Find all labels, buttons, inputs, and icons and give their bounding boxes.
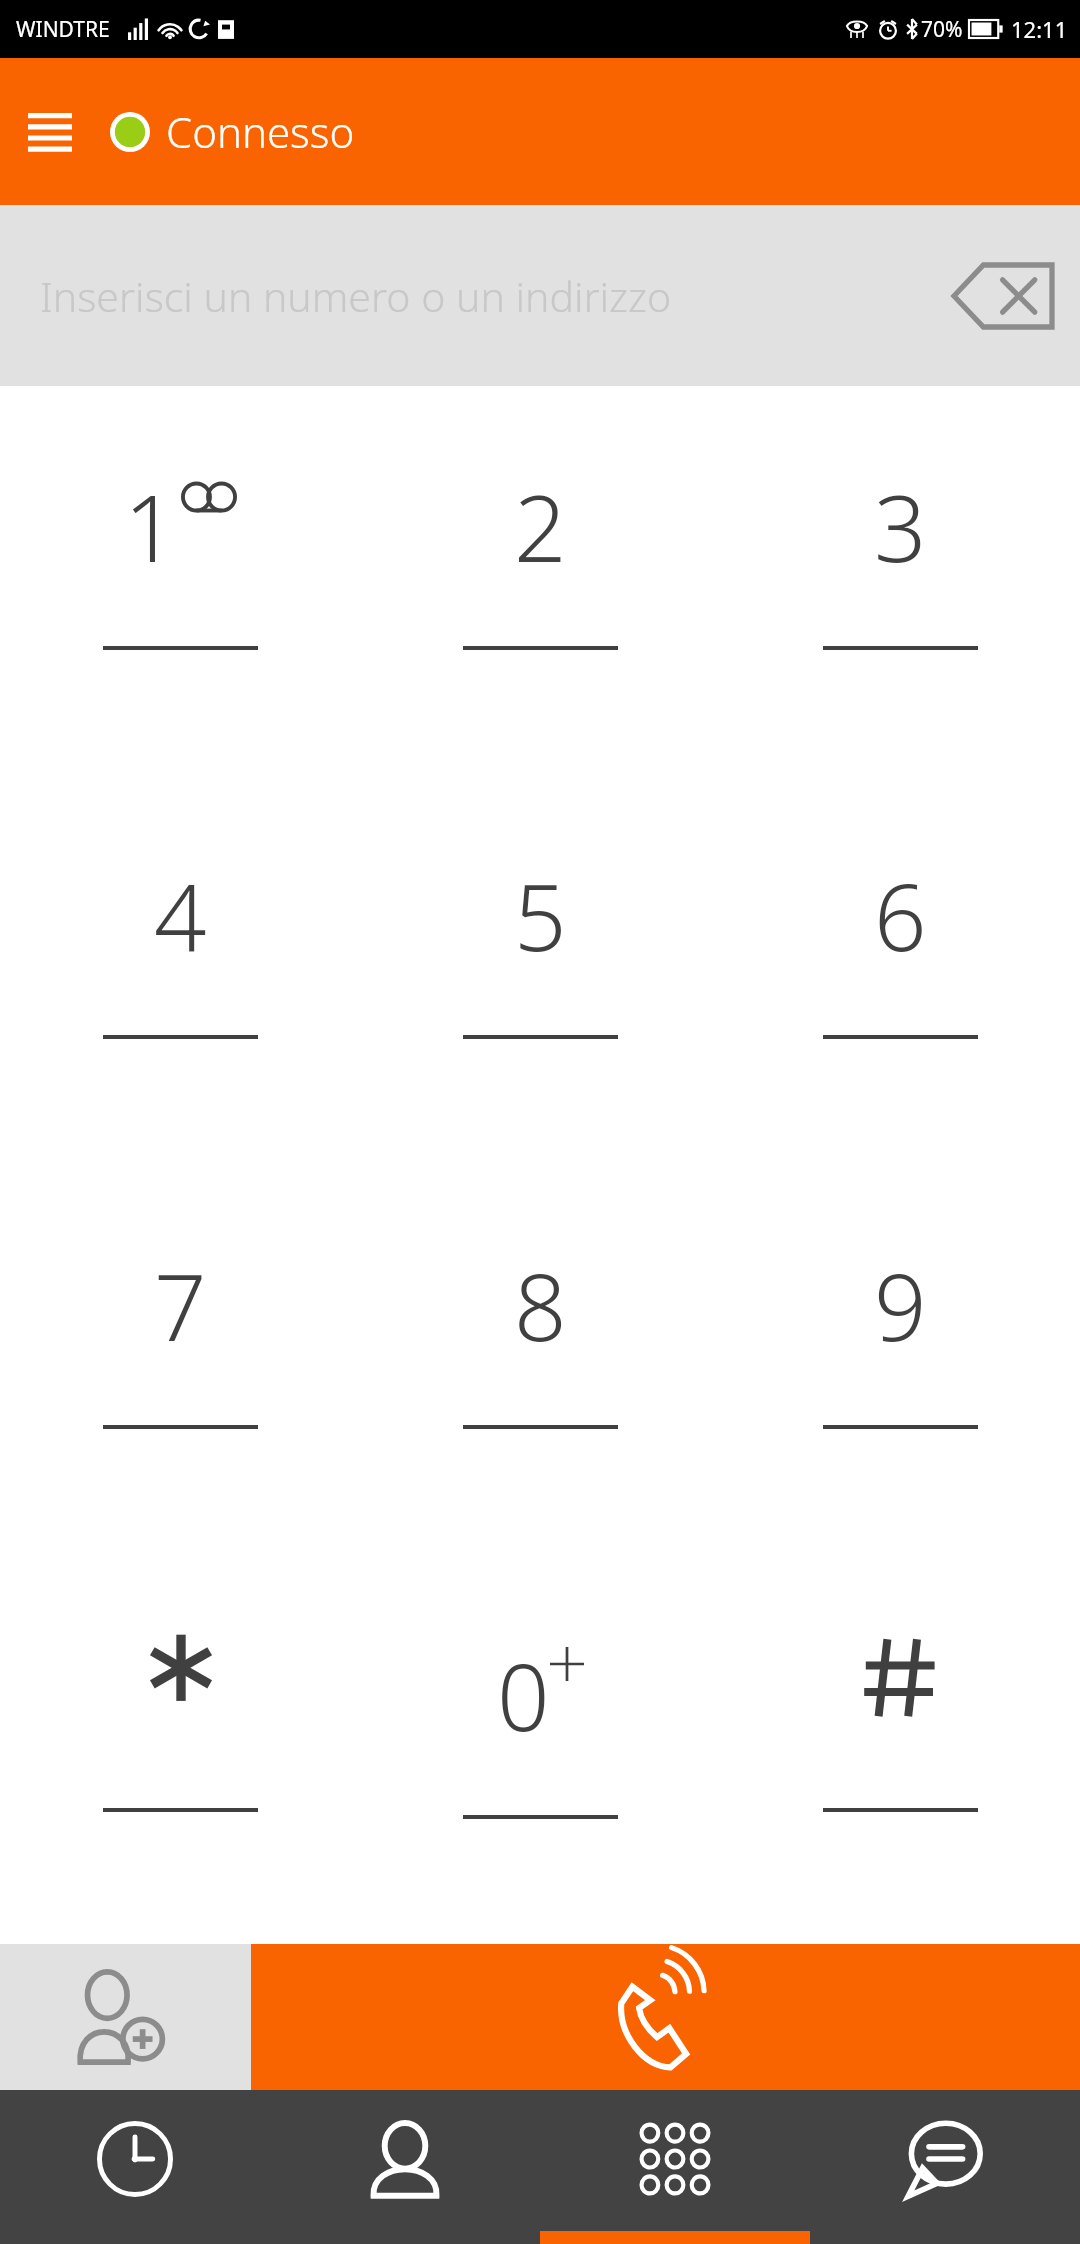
button[interactable]: Recents (0, 2090, 270, 2244)
staticText: 8 (514, 1243, 567, 1368)
button[interactable]: Backspace (948, 251, 1058, 341)
button[interactable]: 2 (360, 386, 720, 775)
staticText: 7 (154, 1243, 207, 1368)
button[interactable]: Messages (810, 2090, 1080, 2244)
button[interactable] (720, 1554, 1080, 1944)
staticText: 4 (154, 853, 207, 978)
button[interactable] (0, 1554, 360, 1944)
button[interactable]: Inserisci un numero o un indirizzo (0, 205, 1080, 386)
button[interactable]: 8 (360, 1164, 720, 1554)
staticText: 70% (921, 15, 963, 44)
staticText: 5 (514, 853, 567, 978)
button[interactable]: 5 (360, 775, 720, 1164)
button[interactable]: 7 (0, 1164, 360, 1554)
button[interactable]: 3 (720, 386, 1080, 775)
button[interactable]: 0 (360, 1554, 720, 1944)
staticText: Inserisci un numero o un indirizzo (40, 268, 672, 324)
staticText: WINDTRE (16, 15, 110, 44)
button[interactable]: 9 (720, 1164, 1080, 1554)
staticText: 0 (497, 1633, 550, 1758)
button[interactable]: Dialpad (540, 2090, 810, 2244)
button[interactable]: Contacts (270, 2090, 540, 2244)
staticText: 3 (874, 464, 927, 589)
staticText: 9 (874, 1243, 927, 1368)
button[interactable]: 6 (720, 775, 1080, 1164)
button[interactable]: Add contact (0, 1944, 251, 2090)
staticText: 12:11 (1011, 14, 1068, 44)
staticText: 1 (124, 464, 177, 589)
button[interactable]: 1 (0, 386, 360, 775)
staticText: Connesso (166, 103, 355, 160)
button[interactable]: Menu (18, 100, 82, 164)
staticText: 2 (514, 464, 567, 589)
button[interactable]: Call (251, 1944, 1080, 2090)
button[interactable]: 4 (0, 775, 360, 1164)
staticText: 6 (874, 853, 927, 978)
